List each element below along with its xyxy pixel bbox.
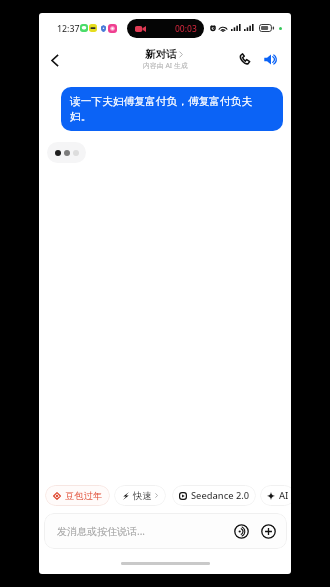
- staticText: AI: [279, 489, 289, 502]
- staticText: 12:37: [57, 23, 80, 35]
- staticText: 00:03: [175, 23, 197, 35]
- staticText: 内容由 AI 生成: [143, 61, 188, 70]
- button[interactable]: 发消息或按住说话...: [44, 513, 287, 549]
- staticText: 豆包过年: [65, 490, 103, 502]
- staticText: 读一下夫妇傅复富付负，傅复富付负夫 妇。: [70, 94, 253, 124]
- staticText: 新对话: [145, 48, 177, 61]
- button[interactable]: Call: [234, 48, 256, 70]
- staticText: Seedance 2.0: [191, 489, 250, 502]
- button[interactable]: Add: [261, 524, 276, 539]
- staticText: 发消息或按住说话...: [57, 524, 146, 538]
- button[interactable]: 新对话: [39, 48, 290, 61]
- button[interactable]: Back: [42, 47, 68, 73]
- staticText: 快速: [133, 490, 152, 502]
- button[interactable]: 读一下夫妇傅复富付负，傅复富付负夫 妇。: [61, 87, 283, 131]
- button[interactable]: 快速: [114, 485, 166, 506]
- button[interactable]: 豆包过年: [45, 485, 110, 506]
- button[interactable]: Voice input: [234, 524, 249, 539]
- button[interactable]: Seedance 2.0: [172, 485, 256, 506]
- button[interactable]: Speaker: [260, 48, 282, 70]
- button[interactable]: AI: [260, 485, 291, 506]
